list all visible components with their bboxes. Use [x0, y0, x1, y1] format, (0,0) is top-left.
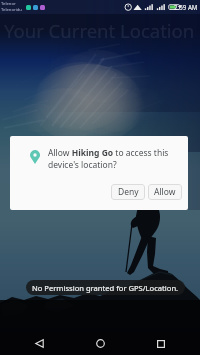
button[interactable]: Back — [17, 332, 61, 355]
staticText: Allow Hiking Go to access this device's … — [48, 147, 178, 171]
button[interactable]: Allow — [148, 184, 182, 200]
staticText: Your Current Location — [4, 18, 195, 43]
button[interactable]: Home — [78, 332, 122, 355]
button[interactable]: Recents — [139, 332, 183, 355]
staticText: Deny — [118, 186, 139, 198]
button[interactable]: Deny — [111, 184, 145, 200]
staticText: No Permission granted for GPS/Location. — [32, 283, 179, 293]
staticText: Telenoridu — [1, 7, 22, 13]
staticText: 2:59 AM — [174, 3, 198, 11]
staticText: Allow — [154, 186, 176, 198]
button[interactable]: No Permission granted for GPS/Location. — [26, 280, 185, 295]
staticText: Telenor — [1, 1, 16, 7]
